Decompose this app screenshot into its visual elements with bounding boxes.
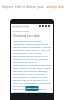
button[interactable]: Search: [12, 25, 29, 28]
staticText: activity data: [45, 4, 64, 9]
button[interactable]: Action: [48, 25, 50, 27]
staticText: Google Account: [13, 30, 30, 33]
staticText: Lorem ipsum dolor sit amet, consectetur …: [13, 40, 51, 93]
button[interactable]: Action: [45, 25, 47, 27]
staticText: Download your data: [13, 34, 40, 38]
staticText: Search Google: [15, 25, 29, 28]
staticText: Create export: [25, 87, 39, 90]
button[interactable]: Action: [42, 25, 44, 27]
button[interactable]: Action: [39, 25, 41, 27]
button[interactable]: Create export: [25, 86, 39, 91]
staticText: Import, edit or delete your: [2, 4, 45, 9]
